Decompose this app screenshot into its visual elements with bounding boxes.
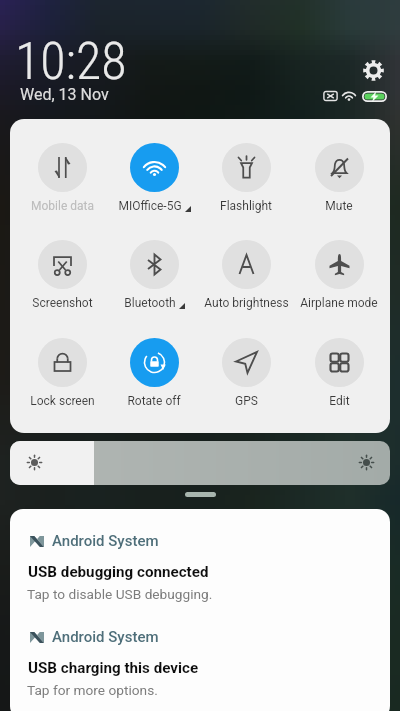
staticText: USB charging this device [28, 659, 199, 677]
staticText: Android System [52, 532, 159, 550]
staticText: Mute [325, 199, 353, 213]
staticText: Lock screen [30, 394, 95, 408]
staticText: Flashlight [220, 199, 272, 213]
staticText: Android System [52, 628, 159, 646]
staticText: MIOffice-5G [118, 199, 182, 213]
button[interactable]: Mobile data [16, 143, 108, 213]
button[interactable]: Mute [293, 143, 385, 213]
staticText: 10:28 [15, 31, 127, 92]
staticText: Tap to disable USB debugging. [27, 586, 213, 602]
staticText: Rotate off [127, 394, 181, 408]
staticText: Bluetooth [124, 296, 176, 310]
button[interactable]: Airplane mode [293, 240, 385, 310]
staticText: Mobile data [31, 199, 94, 213]
staticText: USB debugging connected [28, 563, 209, 581]
button[interactable]: Brightness [10, 441, 390, 485]
button[interactable]: Rotate off [108, 338, 200, 408]
button[interactable]: GPS [200, 338, 292, 408]
staticText: Wed, 13 Nov [20, 85, 109, 104]
button[interactable]: Android System [10, 509, 390, 605]
button[interactable]: MIOffice-5G [108, 143, 200, 213]
staticText: GPS [235, 394, 258, 408]
button[interactable]: Edit [293, 338, 385, 408]
button[interactable]: Screenshot [16, 240, 108, 310]
staticText: Airplane mode [300, 296, 378, 310]
button[interactable]: Android System [10, 605, 390, 701]
button[interactable]: Settings [363, 60, 384, 81]
staticText: Tap for more options. [27, 682, 158, 698]
button[interactable]: Bluetooth [108, 240, 200, 310]
button[interactable]: Flashlight [200, 143, 292, 213]
staticText: Screenshot [32, 296, 93, 310]
button[interactable]: Auto brightness [200, 240, 292, 310]
staticText: Edit [329, 394, 350, 408]
staticText: Auto brightness [204, 296, 289, 310]
button[interactable]: Lock screen [16, 338, 108, 408]
